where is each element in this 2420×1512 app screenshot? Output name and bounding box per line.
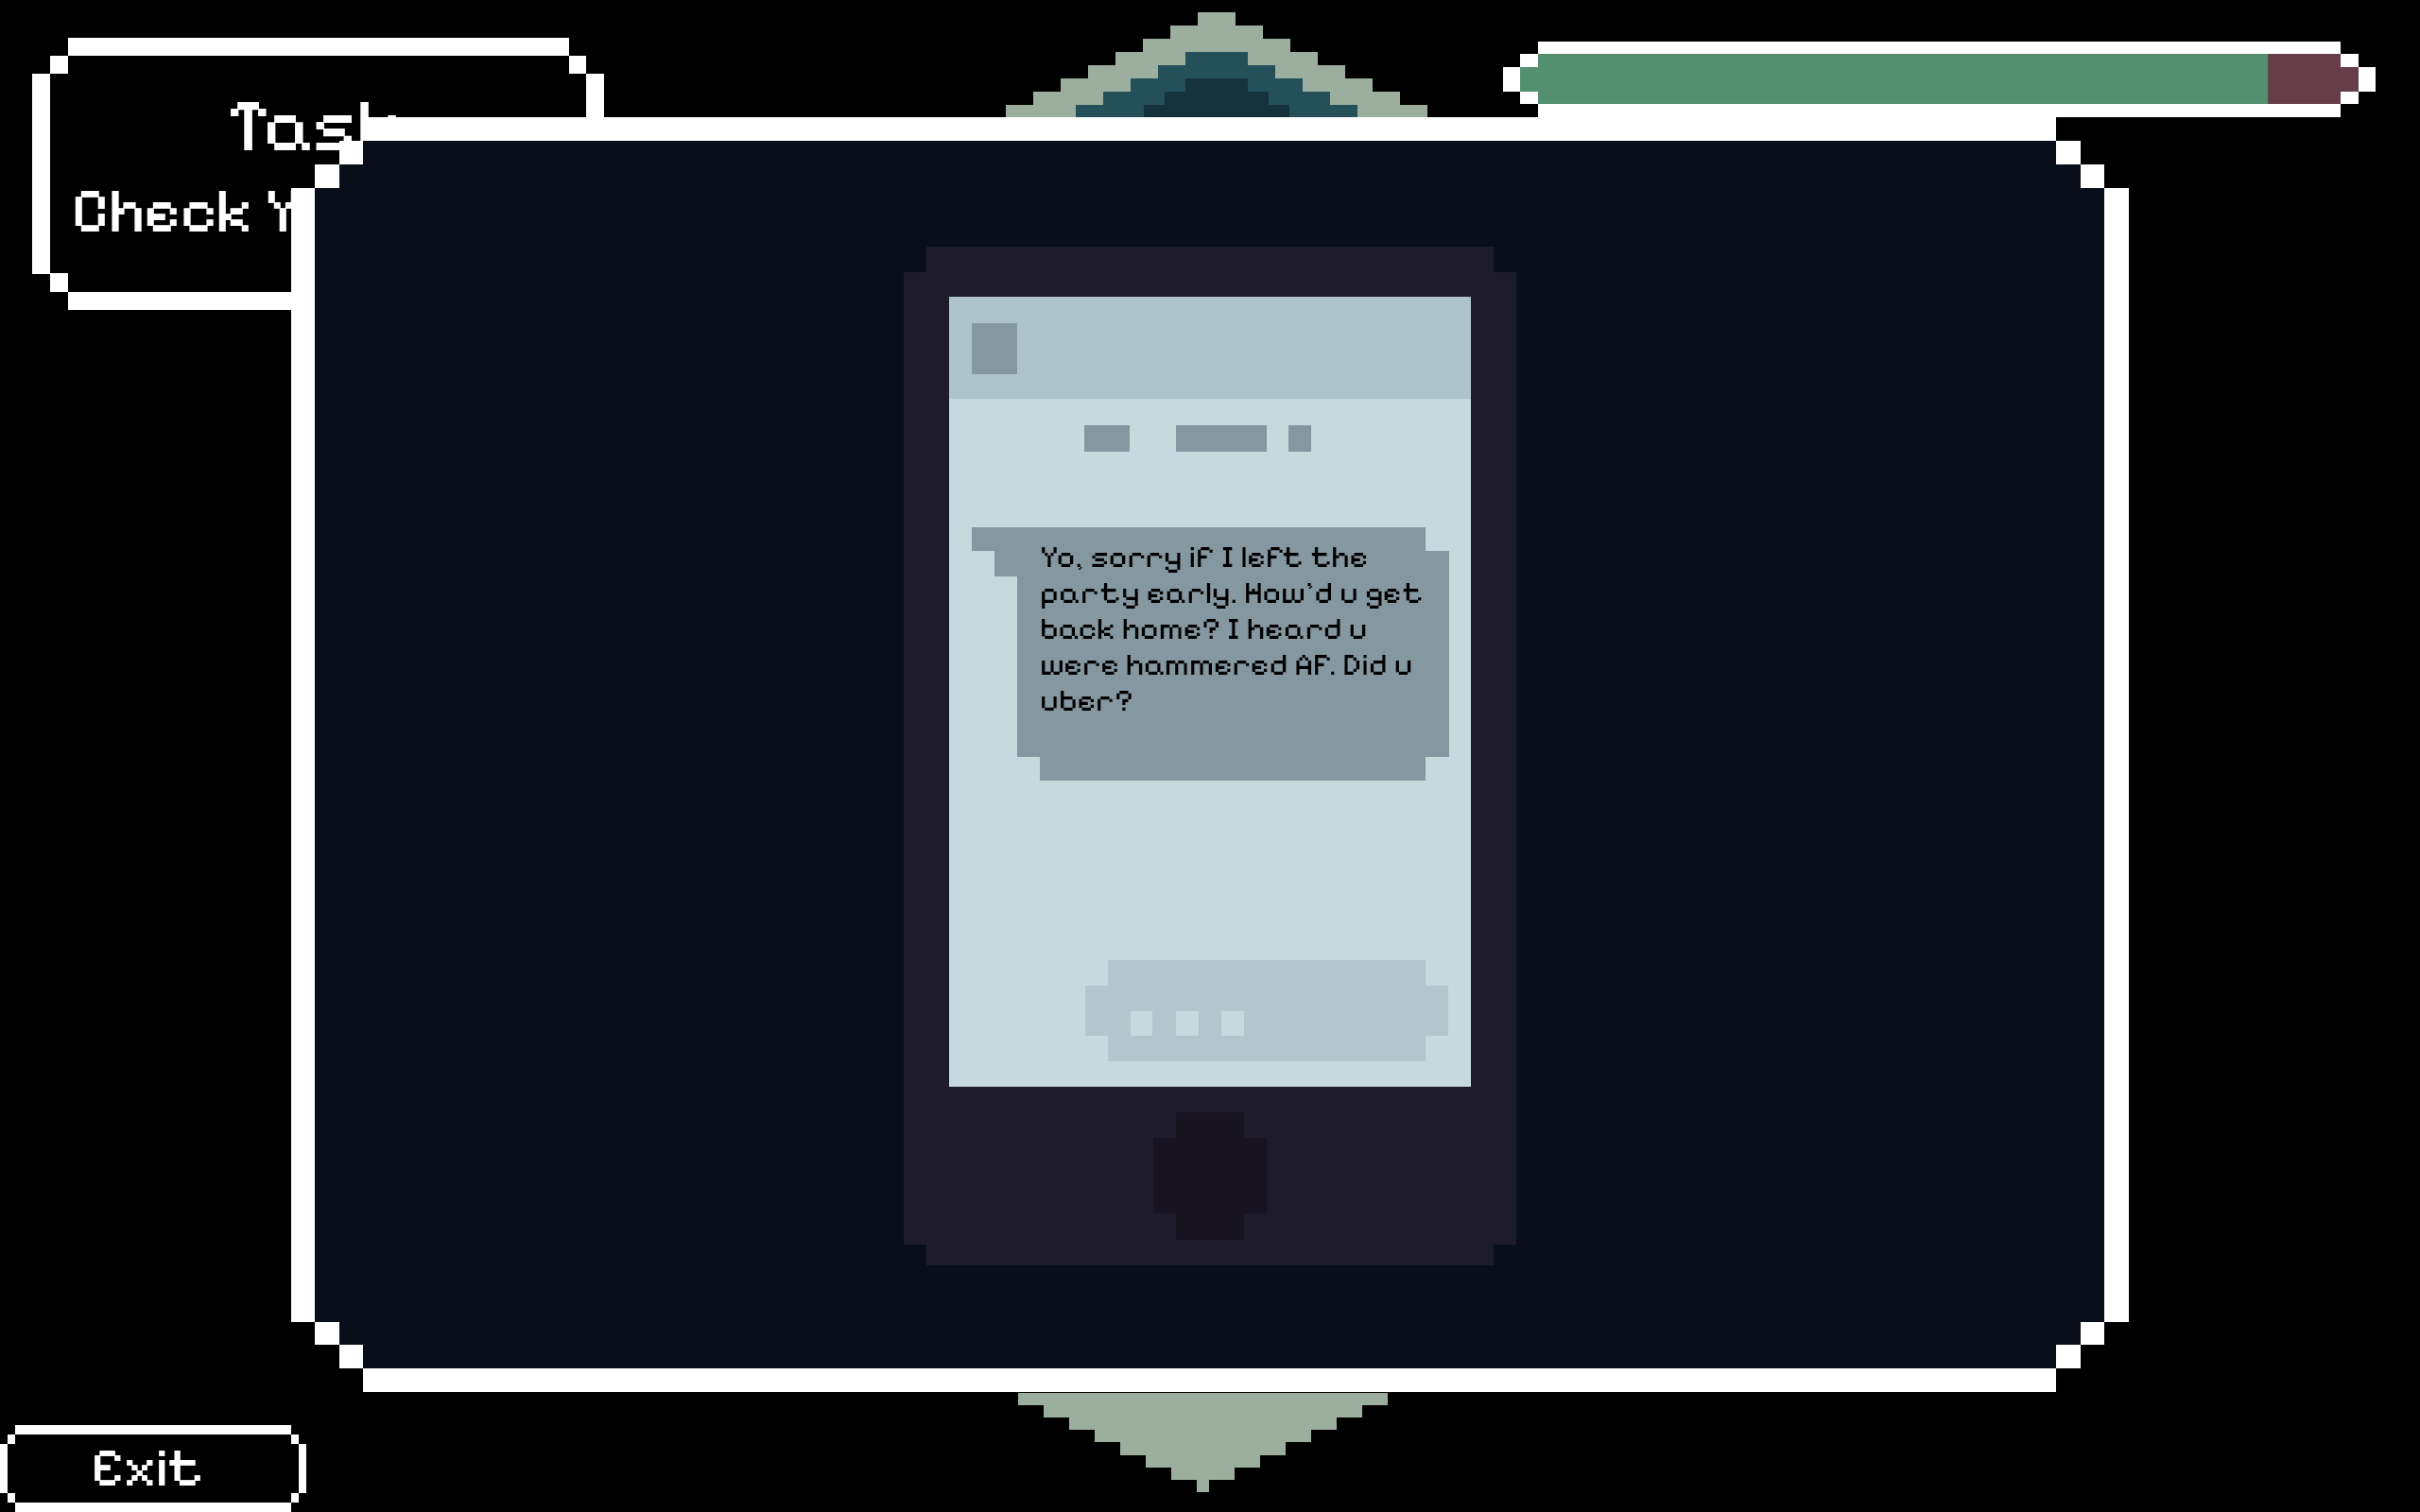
staticText: Exit: [10, 1435, 285, 1501]
button[interactable]: Exit: [0, 1425, 306, 1512]
staticText: Task: [27, 79, 599, 170]
staticText: Check Your Phone: [72, 173, 597, 248]
button[interactable]: Phone: [904, 247, 1516, 1265]
button[interactable]: Task: [32, 38, 605, 311]
staticText: Yo, sorry if I left the party early. How…: [1040, 538, 1427, 720]
